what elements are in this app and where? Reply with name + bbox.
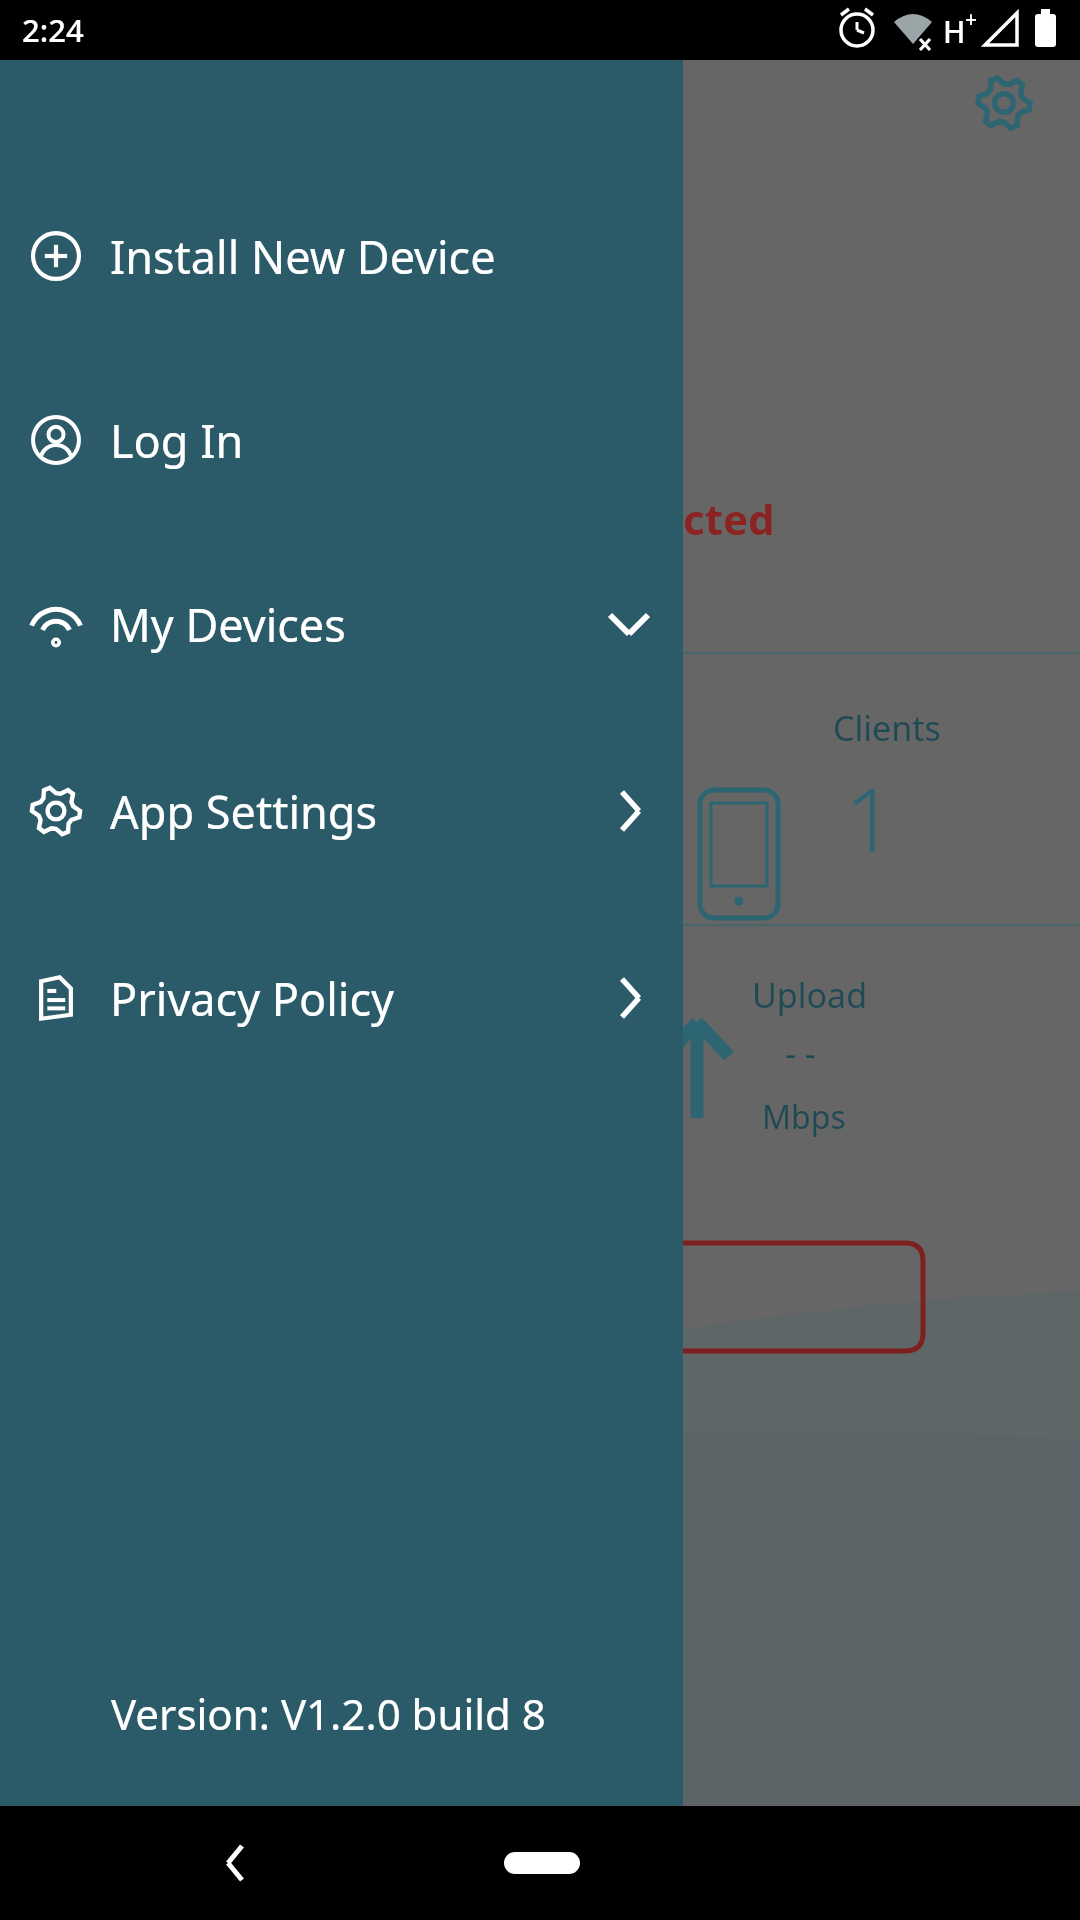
staticText: 1 xyxy=(845,758,896,878)
staticText: 2:24 xyxy=(22,9,84,51)
button[interactable]: Privacy Policy xyxy=(0,942,683,1054)
staticText: Version: V1.2.0 build 8 xyxy=(111,1685,546,1742)
staticText: - - xyxy=(785,1030,816,1076)
staticText: Log In xyxy=(110,410,244,471)
button[interactable]: My Devices xyxy=(0,568,683,680)
staticText: Install New Device xyxy=(110,226,496,287)
button[interactable]: Back xyxy=(190,1806,280,1920)
staticText: Mbps xyxy=(762,1095,846,1139)
button[interactable]: Install New Device xyxy=(0,200,683,312)
staticText: App Settings xyxy=(110,781,378,842)
staticText: Privacy Policy xyxy=(110,968,394,1029)
button[interactable]: Log In xyxy=(0,384,683,496)
button[interactable]: App Settings xyxy=(0,755,683,867)
staticText: H xyxy=(943,11,966,52)
staticText: Upload xyxy=(752,972,868,1018)
staticText: My Devices xyxy=(110,594,346,655)
staticText: + xyxy=(965,5,978,34)
button[interactable]: Home xyxy=(504,1852,580,1874)
staticText: Clients xyxy=(833,705,941,751)
staticText: cted xyxy=(683,490,775,547)
